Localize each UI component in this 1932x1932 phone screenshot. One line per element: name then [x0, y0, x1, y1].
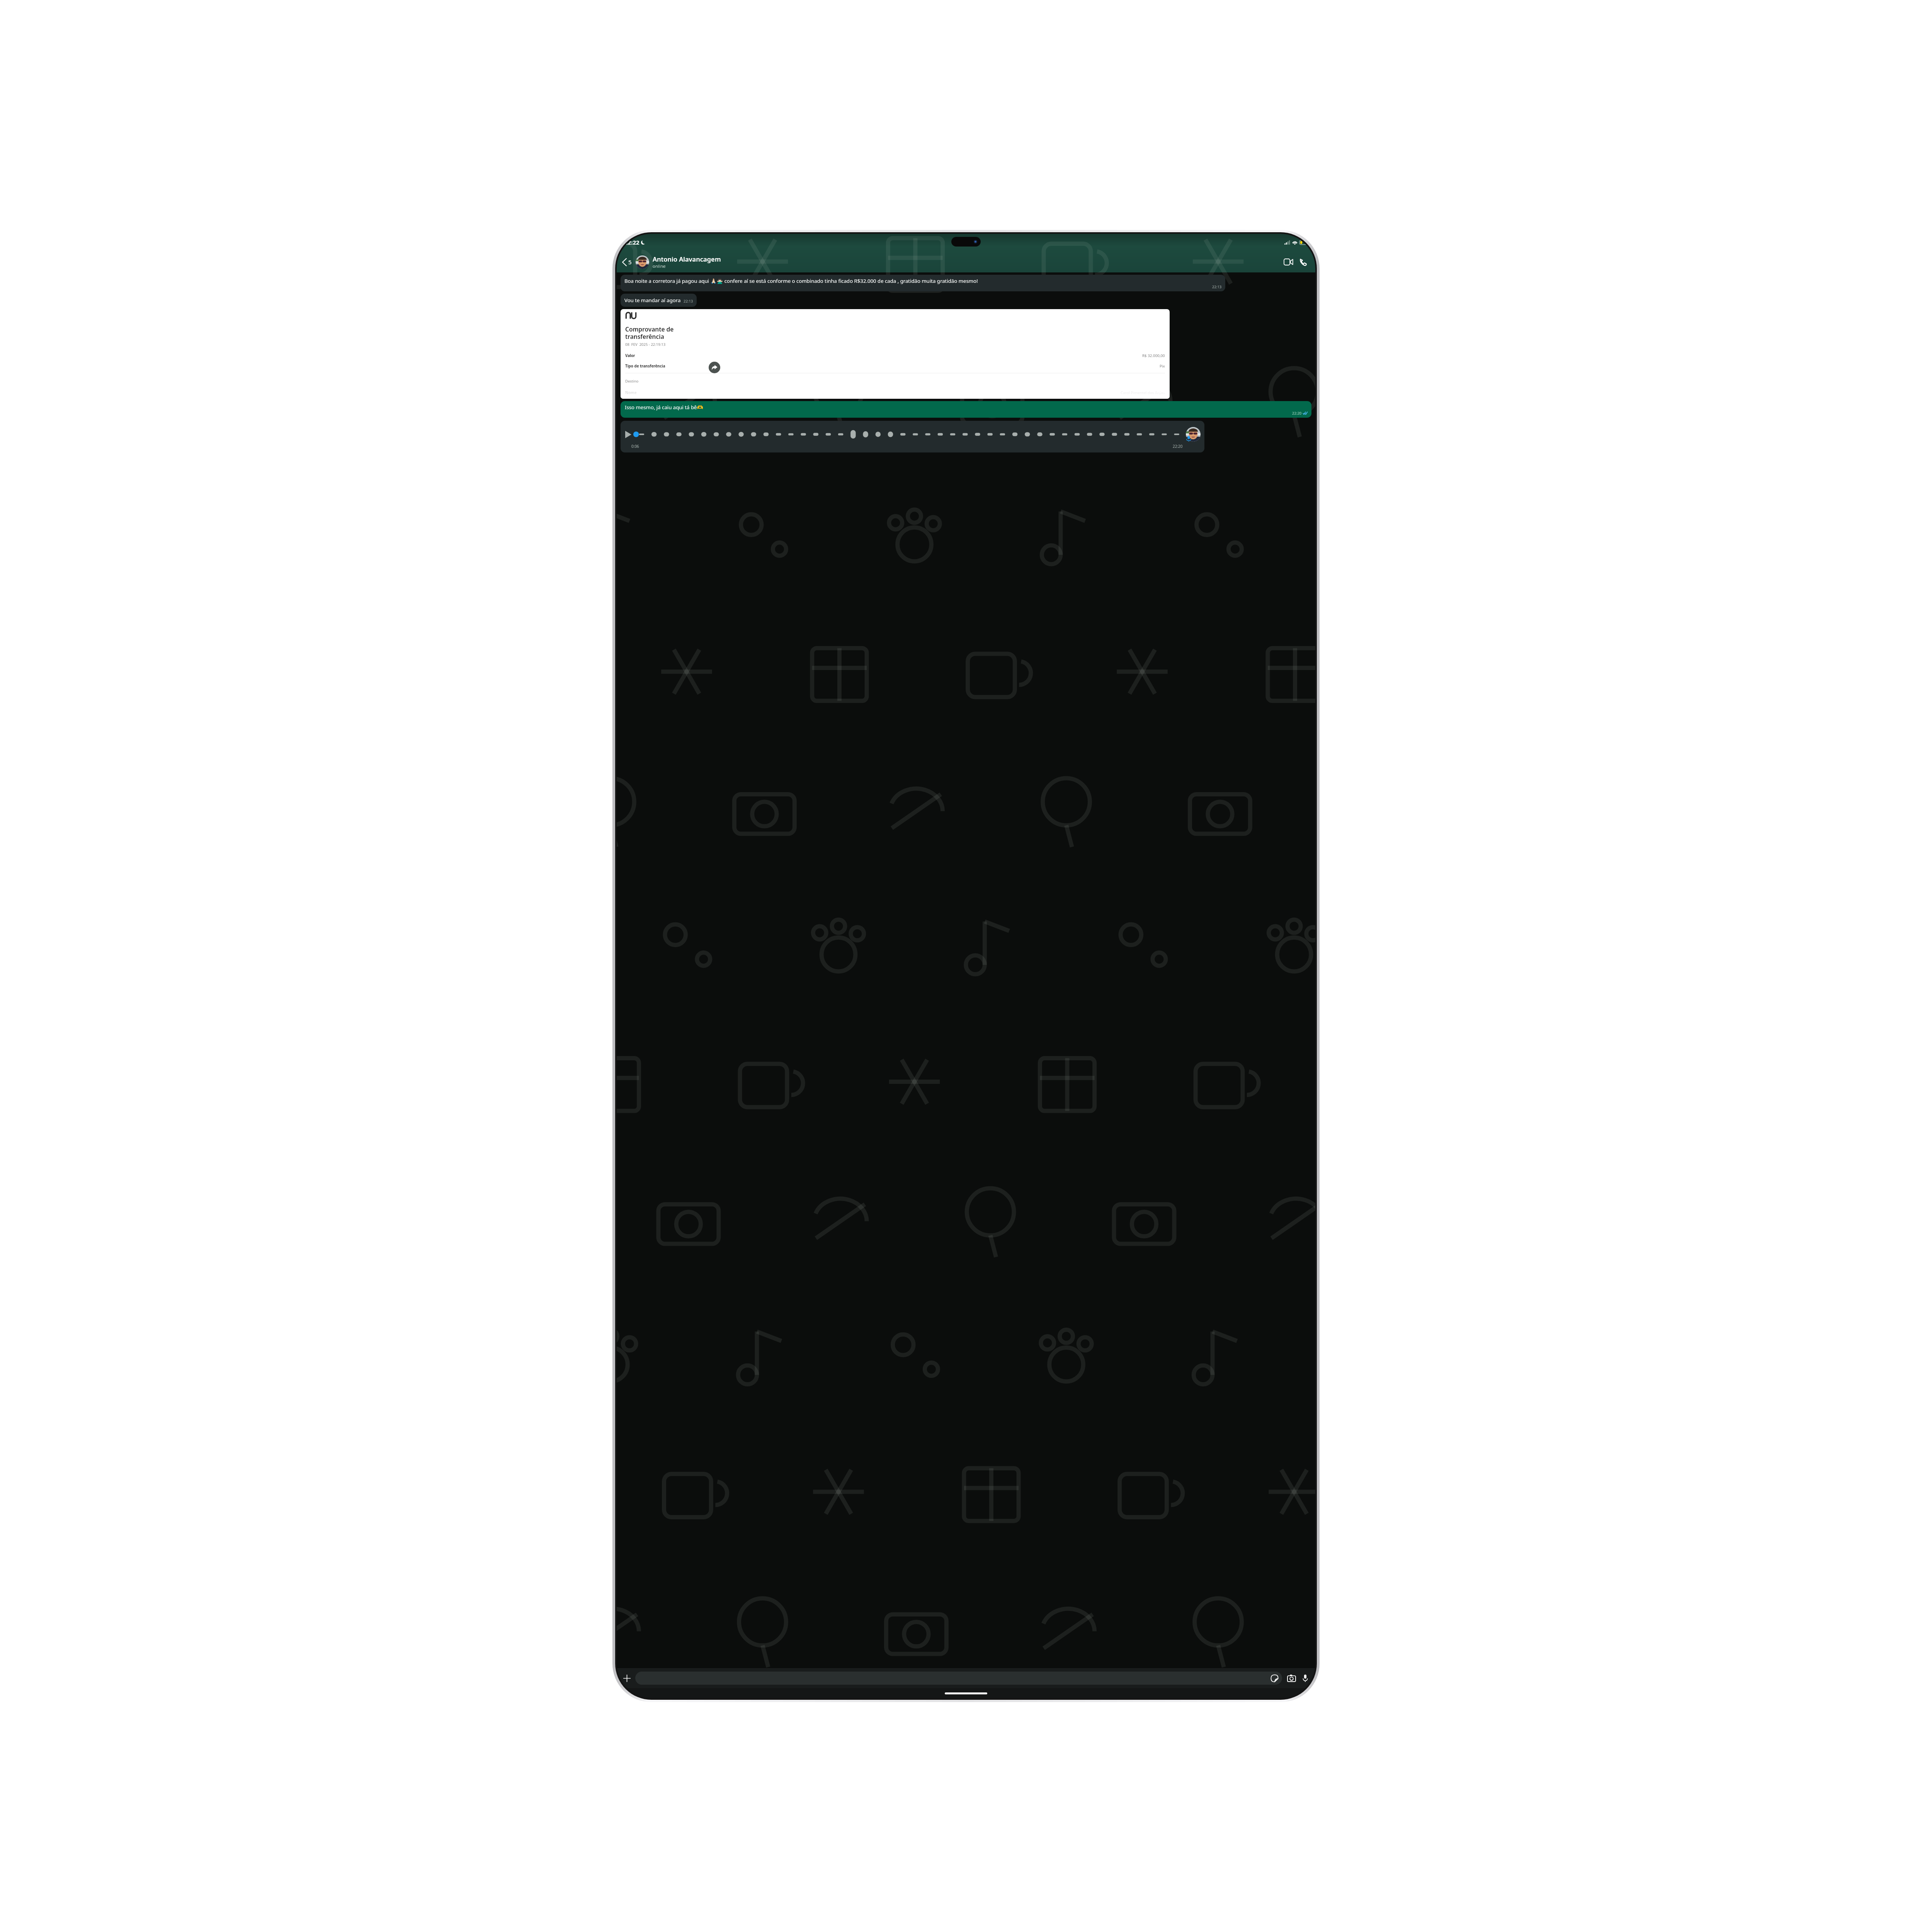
button[interactable]: Comprovante de transferência: [621, 309, 1170, 399]
staticText: Antonio Alavancagem: [653, 255, 721, 263]
staticText: Tipo de transferência: [625, 364, 665, 369]
staticText: Valor: [625, 353, 635, 358]
button[interactable]: Forward: [709, 362, 720, 373]
staticText: 22:13: [684, 299, 693, 304]
staticText: 22:20: [1173, 444, 1183, 449]
button[interactable]: Record voice message: [1299, 1672, 1311, 1684]
button[interactable]: Video call: [1282, 255, 1295, 269]
staticText: 22:13: [1212, 284, 1222, 289]
staticText: 5: [628, 258, 632, 266]
button[interactable]: Stickers: [635, 1672, 1282, 1685]
staticText: R$ 32.000,00: [1142, 353, 1165, 358]
staticText: Isso mesmo, já caiu aqui tá bê🫶: [625, 404, 703, 411]
button[interactable]: Profile photo: [636, 255, 649, 269]
button[interactable]: Boa noite a corretora já pagou aqui 🙏🏻🙅🏻…: [621, 275, 1225, 291]
button[interactable]: Voice message, 0:06: [621, 421, 1204, 452]
other: Stickers: [1271, 1675, 1278, 1682]
staticText: 0:06: [631, 444, 639, 449]
button[interactable]: Camera: [1285, 1672, 1298, 1684]
staticText: Comprovante de transferência: [625, 325, 674, 340]
staticText: 22:20: [1292, 411, 1302, 416]
button[interactable]: Vou te mandar aí agora: [621, 294, 697, 307]
staticText: Carol Pimentel dos Anjos: [1121, 390, 1165, 395]
button[interactable]: Attach: [621, 1672, 633, 1684]
staticText: Boa noite a corretora já pagou aqui 🙏🏻🙅🏻…: [624, 277, 978, 284]
button[interactable]: Isso mesmo, já caiu aqui tá bê🫶: [621, 401, 1311, 418]
staticText: 08 FEV 2025 - 22:19:13: [625, 342, 666, 347]
staticText: Pix: [1160, 364, 1165, 369]
staticText: online: [653, 263, 666, 269]
staticText: Nome: [625, 390, 637, 395]
button[interactable]: Antonio Alavancagem: [653, 255, 1282, 269]
staticText: 22:22: [624, 238, 639, 246]
button[interactable]: Back, 5 unread: [621, 257, 633, 267]
staticText: Vou te mandar aí agora: [624, 297, 681, 304]
button[interactable]: Voice call: [1297, 255, 1310, 269]
staticText: 22:20: [1154, 388, 1165, 394]
staticText: Destino: [625, 379, 639, 384]
